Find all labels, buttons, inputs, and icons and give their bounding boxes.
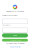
staticText: Privacy · Terms: [9, 46, 20, 48]
button[interactable]: Create account: [2, 39, 28, 41]
staticText: Forgot password? Get help: [5, 43, 24, 44]
staticText: Create account: [9, 39, 20, 41]
staticText: Email or phone number: [2, 14, 18, 16]
button[interactable]: Sign in: [2, 33, 28, 37]
staticText: Sign in: [13, 34, 17, 36]
staticText: Password: [2, 24, 10, 26]
staticText: Sign in to your account now: [6, 10, 24, 12]
